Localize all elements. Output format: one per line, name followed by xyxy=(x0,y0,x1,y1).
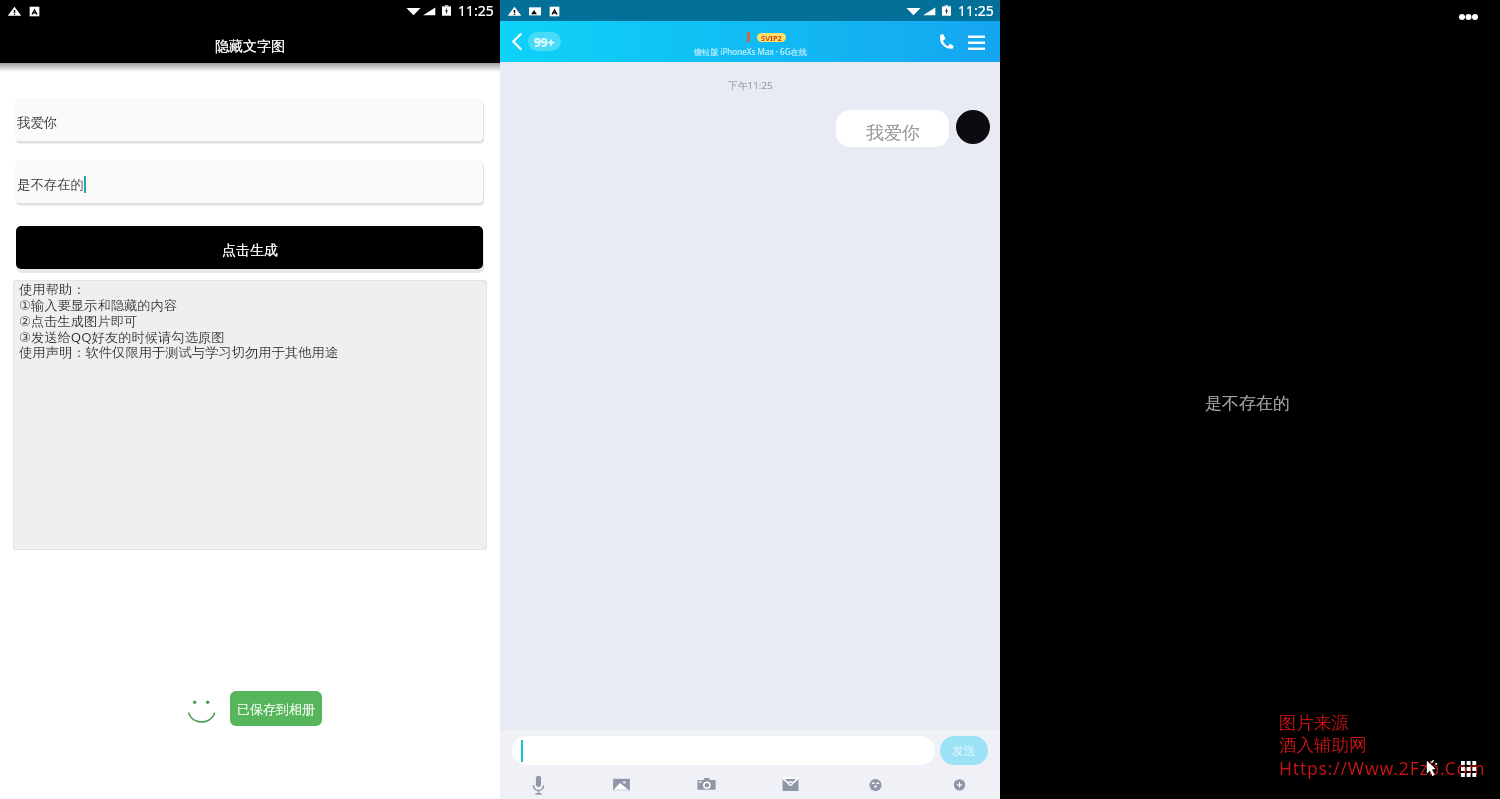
staticText: 是不存在的 xyxy=(1205,393,1290,414)
staticText: 镶钻版 iPhoneXs Max · 6G在线 xyxy=(694,46,807,57)
staticText: 点击生成 xyxy=(222,242,278,260)
button[interactable] xyxy=(512,736,935,765)
staticText: 我爱你 xyxy=(866,122,920,145)
staticText: SVIP2 xyxy=(761,33,782,42)
button[interactable]: Gallery xyxy=(612,775,631,794)
button[interactable]: More options xyxy=(1459,14,1478,20)
button[interactable]: Menu xyxy=(968,35,985,49)
button[interactable]: Red packet xyxy=(781,775,800,794)
staticText: 下午11:25 xyxy=(728,79,773,92)
button[interactable]: 发送 xyxy=(940,736,988,765)
button[interactable]: 99+ xyxy=(528,32,561,51)
staticText: 已保存到相册 xyxy=(237,701,315,717)
staticText: 11:25 xyxy=(458,1,494,20)
button[interactable]: Back xyxy=(512,32,523,51)
staticText: 是不存在的 xyxy=(17,176,84,193)
button[interactable]: More xyxy=(950,775,969,794)
staticText: Https://Www.2Fzb.Com xyxy=(1279,756,1486,780)
button[interactable]: Voice message xyxy=(530,773,547,796)
staticText: 隐藏文字图 xyxy=(215,38,285,56)
button[interactable]: Call xyxy=(937,33,954,50)
staticText: 发送 xyxy=(952,743,976,758)
staticText: 99+ xyxy=(534,34,555,50)
staticText: 我爱你 xyxy=(17,114,58,131)
button[interactable]: Text input field xyxy=(15,98,483,141)
button[interactable]: Camera xyxy=(697,775,716,794)
staticText: 使用帮助： ①输入要显示和隐藏的内容 ②点击生成图片即可 ③发送给QQ好友的时候… xyxy=(19,281,339,361)
button[interactable]: 点击生成 xyxy=(16,226,483,269)
button[interactable]: Emoji xyxy=(866,775,885,794)
staticText: 11:25 xyxy=(958,1,994,20)
staticText: 酒入辅助网 xyxy=(1279,734,1367,756)
button[interactable]: Text input field xyxy=(15,160,483,203)
staticText: 图片来源 xyxy=(1279,712,1349,734)
